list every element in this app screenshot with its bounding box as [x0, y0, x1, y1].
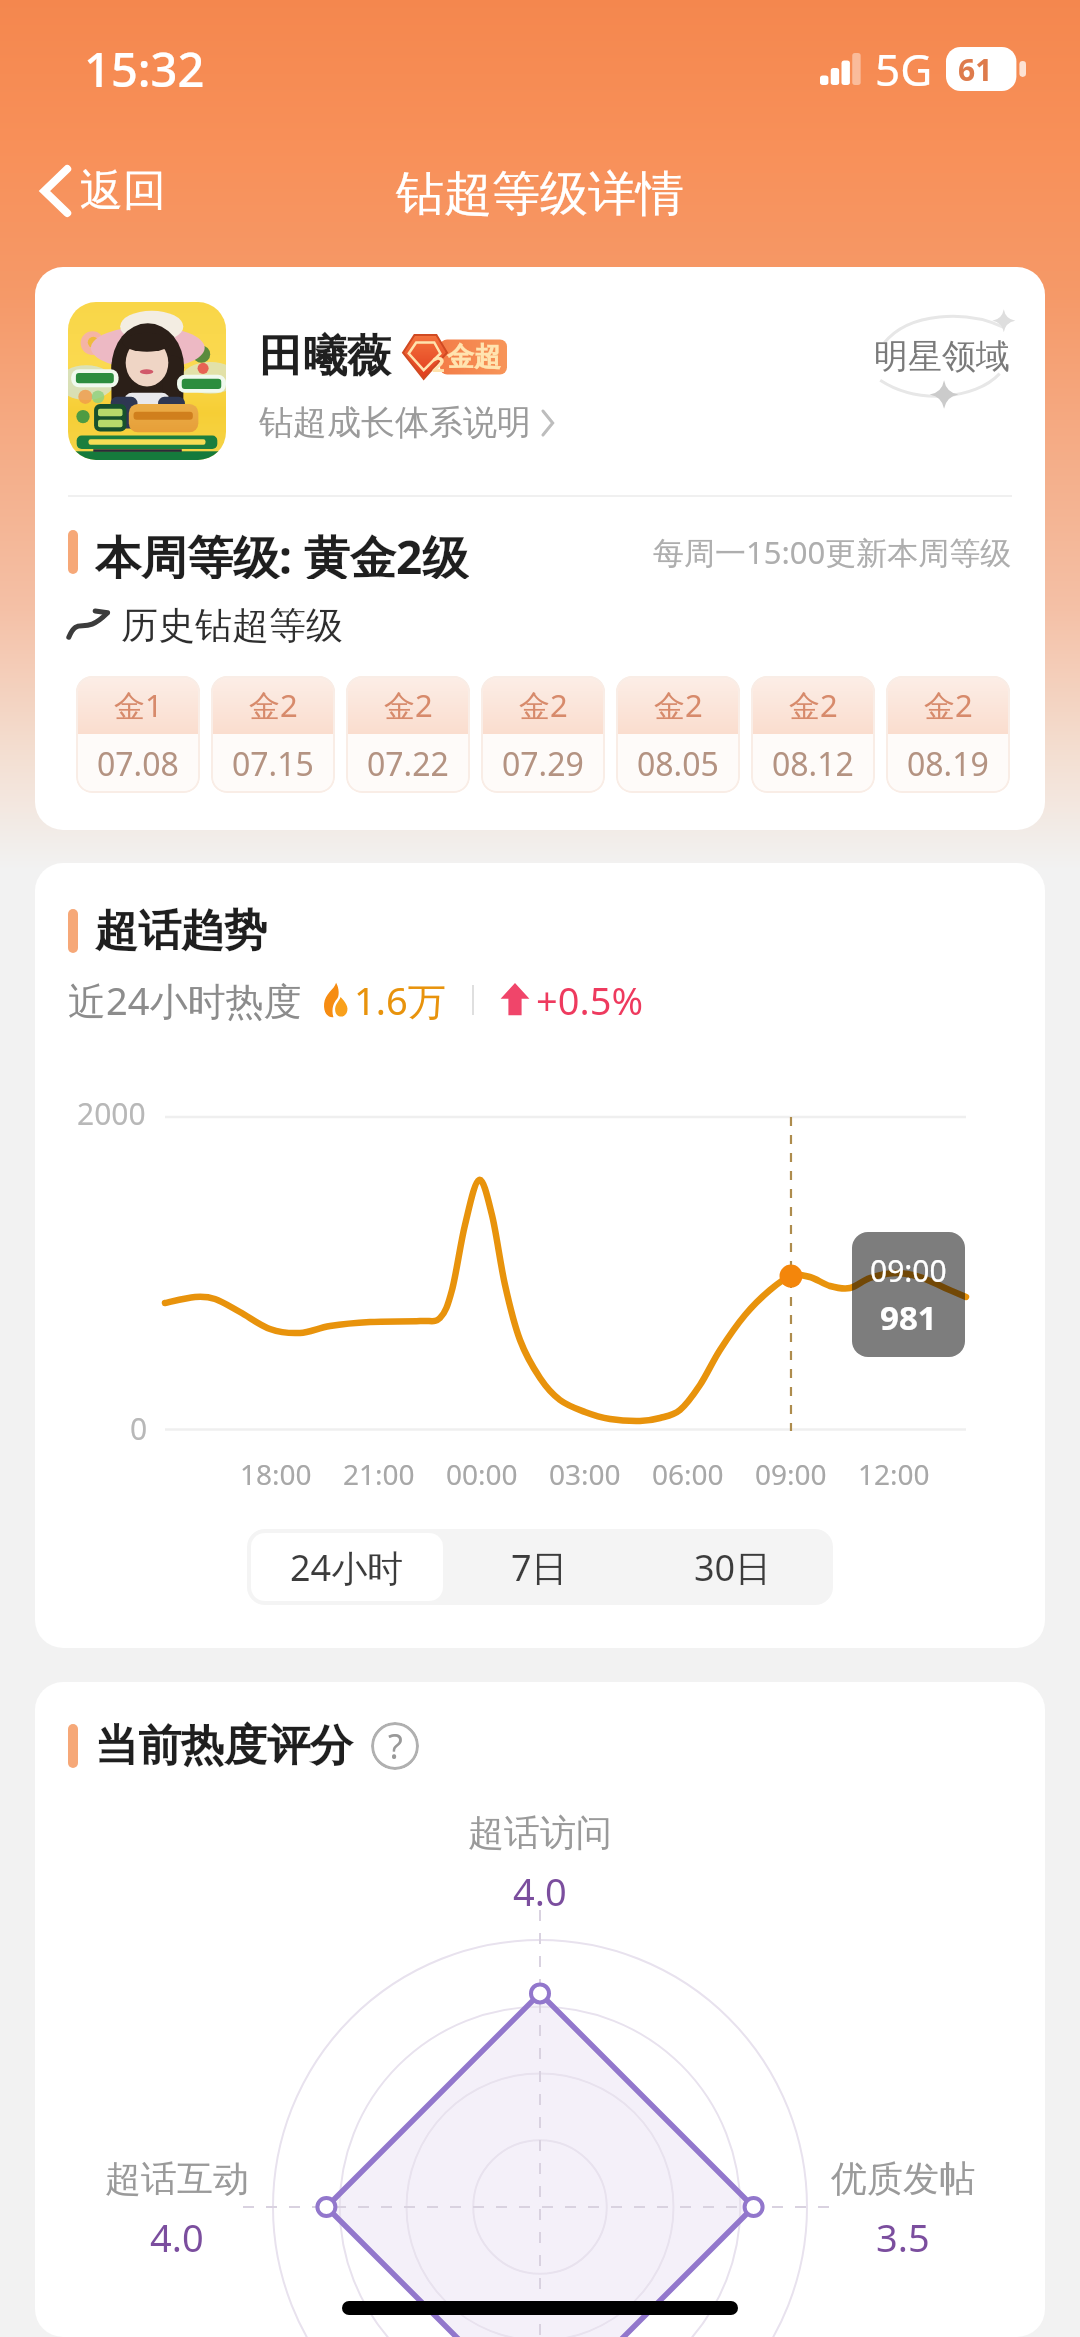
staticText: 30日: [694, 1543, 772, 1592]
staticText: 03:00: [549, 1455, 621, 1493]
staticText: 12:00: [858, 1455, 930, 1493]
staticText: 09:00: [755, 1455, 827, 1493]
staticText: 08.12: [772, 742, 854, 786]
staticText: 1.6万: [354, 974, 446, 1026]
staticText: 每周一15:00更新本周等级: [653, 531, 1012, 573]
staticText: 钻超等级详情: [396, 164, 684, 224]
staticText: 06:00: [652, 1455, 724, 1493]
staticText: 5G: [875, 39, 933, 99]
staticText: 当前热度评分: [95, 1719, 353, 1773]
staticText: 07.15: [232, 742, 314, 786]
staticText: 15:32: [84, 37, 205, 101]
staticText: 2000: [77, 1093, 146, 1134]
button[interactable]: Help: [371, 1722, 419, 1770]
staticText: 金1: [114, 684, 163, 726]
staticText: 超话趋势: [95, 904, 267, 958]
staticText: 4.0: [513, 1865, 567, 1917]
staticText: 24小时: [290, 1543, 404, 1592]
staticText: 返回: [80, 164, 166, 218]
staticText: 近24小时热度: [68, 974, 302, 1026]
staticText: 金2: [654, 684, 703, 726]
staticText: 钻超成长体系说明: [259, 401, 531, 444]
staticText: 金2: [924, 684, 973, 726]
staticText: ?: [388, 1723, 403, 1769]
staticText: 07.22: [367, 742, 449, 786]
staticText: 明星领域: [874, 335, 1010, 378]
staticText: 金超: [447, 340, 501, 374]
staticText: 08.05: [637, 742, 719, 786]
staticText: 0: [130, 1408, 148, 1449]
button[interactable]: Back: [30, 156, 176, 226]
staticText: 18:00: [240, 1455, 312, 1493]
staticText: 07.08: [97, 742, 179, 786]
staticText: 优质发帖: [831, 2156, 975, 2201]
staticText: 00:00: [446, 1455, 518, 1493]
staticText: 金2: [789, 684, 838, 726]
staticText: 超话访问: [468, 1810, 612, 1855]
button[interactable]: 30日: [636, 1533, 829, 1601]
button[interactable]: 7日: [443, 1533, 636, 1601]
staticText: 金2: [384, 684, 433, 726]
staticText: 21:00: [343, 1455, 415, 1493]
staticText: 09:00: [870, 1250, 947, 1291]
staticText: 2: [432, 348, 445, 378]
staticText: 08.19: [907, 742, 989, 786]
staticText: 本周等级: 黄金2级: [95, 525, 469, 579]
staticText: 金2: [519, 684, 568, 726]
staticText: 超话互动: [105, 2156, 249, 2201]
staticText: 7日: [511, 1543, 568, 1592]
staticText: 3.5: [876, 2211, 930, 2263]
staticText: 07.29: [502, 742, 584, 786]
button[interactable]: 钻超成长体系说明: [259, 401, 554, 444]
staticText: 田曦薇: [259, 329, 391, 384]
staticText: 金2: [249, 684, 298, 726]
staticText: +0.5%: [536, 974, 643, 1026]
staticText: 历史钻超等级: [121, 602, 343, 649]
staticText: 4.0: [150, 2211, 204, 2263]
staticText: 981: [880, 1295, 937, 1340]
button[interactable]: 24小时: [251, 1533, 443, 1601]
staticText: 61: [958, 49, 993, 90]
